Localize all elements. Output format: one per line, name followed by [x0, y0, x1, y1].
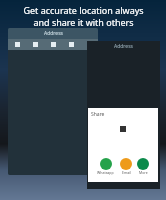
button[interactable] — [100, 158, 112, 170]
staticText: Whatsapp — [97, 170, 114, 175]
staticText: Address — [44, 30, 63, 37]
staticText: Get accurate location always — [23, 4, 144, 16]
staticText: and share it with others — [33, 16, 134, 28]
staticText: More — [139, 170, 148, 175]
button[interactable] — [137, 158, 149, 170]
staticText: Address — [114, 43, 133, 50]
staticText: Email — [122, 170, 131, 175]
button[interactable] — [120, 158, 132, 170]
staticText: Share — [91, 111, 105, 118]
